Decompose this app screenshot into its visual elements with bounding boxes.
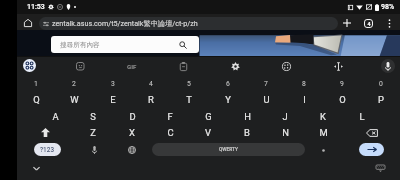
- button[interactable]: 4: [132, 77, 170, 90]
- button[interactable]: 3: [94, 77, 132, 90]
- button[interactable]: D: [113, 108, 151, 125]
- staticText: M: [319, 127, 328, 138]
- button[interactable]: More options: [381, 15, 397, 31]
- button[interactable]: U: [247, 91, 285, 108]
- button[interactable]: Stickers: [72, 58, 88, 74]
- button[interactable]: Hide keyboard: [372, 160, 388, 176]
- button[interactable]: C: [151, 124, 189, 141]
- button[interactable]: Tabs: [360, 15, 376, 31]
- staticText: 9: [340, 80, 344, 88]
- staticText: 8: [302, 80, 306, 88]
- button[interactable]: Home: [20, 15, 36, 31]
- button[interactable]: V: [189, 124, 227, 141]
- button[interactable]: Period: [315, 142, 331, 158]
- button[interactable]: B: [228, 124, 266, 141]
- staticText: N: [282, 127, 289, 138]
- staticText: Q: [33, 94, 40, 105]
- staticText: QWERTY: [219, 147, 238, 153]
- button[interactable]: Voice input: [380, 58, 396, 74]
- staticText: Z: [90, 127, 96, 138]
- staticText: I: [303, 94, 306, 105]
- staticText: F: [167, 111, 173, 122]
- button[interactable]: A: [36, 108, 74, 125]
- staticText: 11:53: [27, 3, 45, 11]
- staticText: B: [244, 127, 250, 138]
- staticText: U: [263, 94, 270, 105]
- staticText: 5: [187, 80, 191, 88]
- button[interactable]: E: [94, 91, 132, 108]
- button[interactable]: R: [132, 91, 170, 108]
- button[interactable]: 搜尋所有內容: [51, 36, 199, 53]
- staticText: V: [205, 127, 211, 138]
- staticText: 1: [34, 80, 38, 88]
- button[interactable]: 7: [247, 77, 285, 90]
- button[interactable]: Q: [17, 91, 55, 108]
- button[interactable]: Change language: [124, 142, 140, 158]
- button[interactable]: J: [266, 108, 304, 125]
- staticText: 2: [72, 80, 76, 88]
- button[interactable]: Voice typing: [86, 142, 102, 158]
- button[interactable]: Z: [74, 124, 112, 141]
- button[interactable]: Themes: [278, 58, 294, 74]
- staticText: W: [70, 94, 79, 105]
- button[interactable]: F: [151, 108, 189, 125]
- staticText: S: [90, 111, 96, 122]
- button[interactable]: P: [362, 91, 400, 108]
- staticText: R: [148, 94, 154, 105]
- button[interactable]: 1: [17, 77, 55, 90]
- button[interactable]: G: [189, 108, 227, 125]
- staticText: T: [186, 94, 192, 105]
- staticText: G: [205, 111, 212, 122]
- button[interactable]: Back: [28, 160, 44, 176]
- staticText: 0: [379, 80, 383, 88]
- button[interactable]: X: [113, 124, 151, 141]
- staticText: A: [52, 111, 59, 122]
- staticText: O: [339, 94, 346, 105]
- button[interactable]: Y: [209, 91, 247, 108]
- button[interactable]: I: [285, 91, 323, 108]
- button[interactable]: ?123: [34, 143, 61, 156]
- button[interactable]: H: [228, 108, 266, 125]
- staticText: 4: [367, 21, 371, 27]
- button[interactable]: Clipboard: [175, 58, 191, 74]
- button[interactable]: O: [323, 91, 361, 108]
- button[interactable]: 5: [170, 77, 208, 90]
- button[interactable]: 2: [55, 77, 93, 90]
- button[interactable]: 0: [362, 77, 400, 90]
- button[interactable]: Text editing: [330, 58, 346, 74]
- staticText: D: [129, 111, 136, 122]
- staticText: 6: [226, 80, 230, 88]
- staticText: E: [110, 94, 116, 105]
- button[interactable]: W: [55, 91, 93, 108]
- staticText: 搜尋所有內容: [60, 41, 100, 49]
- staticText: 3: [111, 80, 115, 88]
- button[interactable]: New tab: [339, 15, 355, 31]
- button[interactable]: 6: [209, 77, 247, 90]
- button[interactable]: Enter: [359, 143, 384, 156]
- button[interactable]: L: [343, 108, 381, 125]
- staticText: zentalk.asus.com/t5/zentalk繁中論壇/ct-p/zh: [52, 19, 198, 28]
- button[interactable]: S: [74, 108, 112, 125]
- button[interactable]: N: [266, 124, 304, 141]
- staticText: ?123: [40, 146, 55, 154]
- button[interactable]: 9: [323, 77, 361, 90]
- staticText: 4: [149, 80, 153, 88]
- staticText: Y: [225, 94, 231, 105]
- staticText: K: [320, 111, 326, 122]
- staticText: GIF: [127, 63, 137, 70]
- button[interactable]: Gboard menu: [21, 57, 37, 73]
- button[interactable]: M: [304, 124, 342, 141]
- button[interactable]: GIF: [124, 58, 140, 74]
- staticText: J: [282, 111, 288, 122]
- button[interactable]: zentalk.asus.com/t5/zentalk繁中論壇/ct-p/zh: [39, 17, 338, 30]
- button[interactable]: Settings: [227, 58, 243, 74]
- button[interactable]: QWERTY: [152, 143, 305, 156]
- button[interactable]: K: [304, 108, 342, 125]
- button[interactable]: 8: [285, 77, 323, 90]
- staticText: L: [359, 111, 365, 122]
- button[interactable]: T: [170, 91, 208, 108]
- staticText: X: [129, 127, 135, 138]
- button[interactable]: Shift: [17, 124, 74, 141]
- button[interactable]: Backspace: [343, 124, 400, 141]
- staticText: P: [378, 94, 384, 105]
